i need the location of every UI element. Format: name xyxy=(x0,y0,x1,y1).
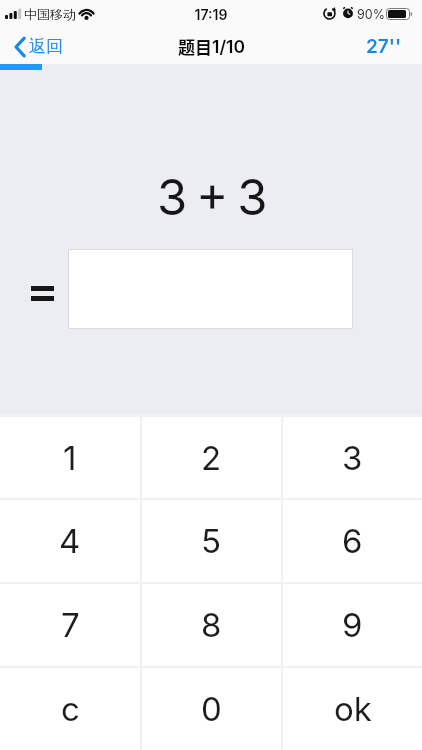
staticText: ok xyxy=(334,689,372,729)
button[interactable]: 1 xyxy=(0,417,140,498)
staticText: 3 + 3 xyxy=(0,168,422,227)
staticText: 3 xyxy=(342,438,363,478)
button[interactable]: 7 xyxy=(0,584,140,666)
staticText: 7 xyxy=(61,605,80,645)
button[interactable]: 4 xyxy=(0,500,140,582)
staticText: 9 xyxy=(342,605,363,645)
staticText: 中国移动 xyxy=(24,6,76,22)
staticText: 27'' xyxy=(366,35,402,58)
staticText: 90% xyxy=(357,7,385,22)
button[interactable]: ok xyxy=(283,668,422,750)
staticText: 6 xyxy=(342,521,363,561)
staticText: c xyxy=(61,689,80,729)
button[interactable]: 5 xyxy=(142,500,281,582)
button[interactable]: 6 xyxy=(283,500,422,582)
button[interactable]: 27'' xyxy=(366,35,402,58)
staticText: 4 xyxy=(59,521,81,561)
staticText: 2 xyxy=(201,438,222,478)
button[interactable]: 9 xyxy=(283,584,422,666)
staticText: 返回 xyxy=(29,36,63,57)
button[interactable]: 8 xyxy=(142,584,281,666)
staticText: 1/10 xyxy=(212,36,245,57)
button[interactable]: 2 xyxy=(142,417,281,498)
staticText: 题目 xyxy=(178,34,212,59)
button[interactable]: 3 xyxy=(283,417,422,498)
staticText: 17:19 xyxy=(0,6,422,23)
button[interactable]: 0 xyxy=(142,668,281,750)
staticText: 1 xyxy=(63,438,77,478)
button[interactable]: c xyxy=(0,668,140,750)
staticText: 5 xyxy=(201,521,222,561)
staticText: 0 xyxy=(201,689,222,729)
staticText: 8 xyxy=(201,605,222,645)
button[interactable]: 返回 xyxy=(14,36,63,57)
